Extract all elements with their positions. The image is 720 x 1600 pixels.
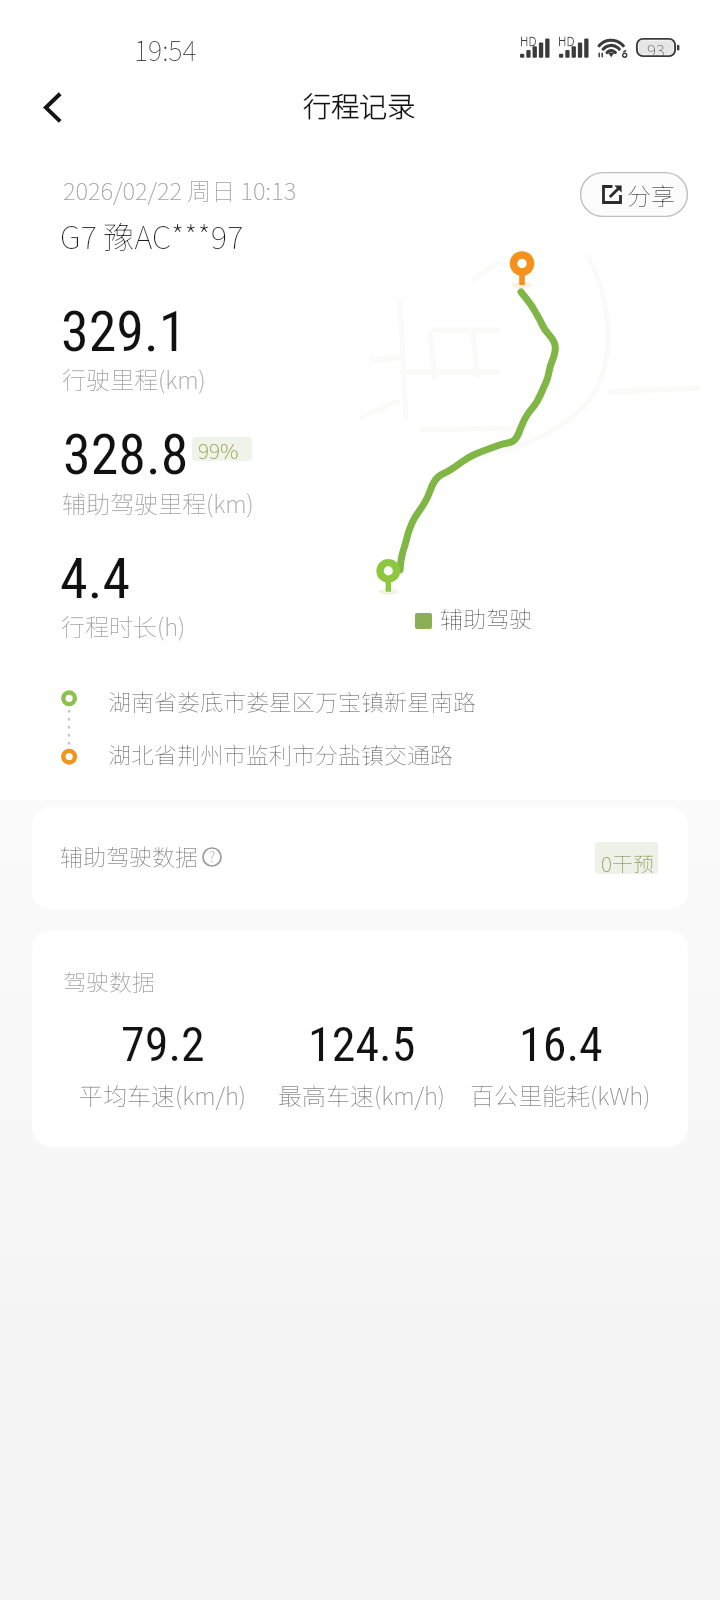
staticText: 79.2 — [121, 1016, 205, 1072]
staticText: 124.5 — [308, 1016, 416, 1072]
staticText: G7 豫AC***97 — [60, 213, 244, 258]
staticText: 百公里能耗(kWh) — [470, 1077, 651, 1112]
staticText: 驾驶数据 — [63, 964, 155, 997]
staticText: 辅助驾驶数据 — [60, 839, 198, 872]
staticText: 19:54 — [134, 30, 197, 69]
button[interactable]: 湖北省荆州市监利市分盐镇交通路 — [44, 731, 604, 773]
staticText: 4.4 — [60, 546, 131, 612]
staticText: HD — [520, 32, 537, 49]
staticText: 0干预 — [601, 848, 654, 878]
staticText: 328.8 — [63, 422, 189, 488]
staticText: 辅助驾驶 — [440, 601, 532, 634]
staticText: 16.4 — [519, 1016, 603, 1072]
staticText: 平均车速(km/h) — [79, 1077, 246, 1112]
button[interactable]: 辅助驾驶数据 — [32, 807, 688, 910]
staticText: 分享 — [627, 177, 675, 212]
staticText: 99% — [198, 435, 239, 465]
staticText: 辅助驾驶里程(km) — [62, 485, 254, 520]
staticText: 2026/02/22 周日 10:13 — [63, 172, 297, 207]
staticText: ? — [209, 846, 216, 866]
staticText: 93 — [647, 37, 665, 56]
staticText: 最高车速(km/h) — [278, 1077, 445, 1112]
staticText: 329.1 — [61, 299, 187, 365]
staticText: HD — [558, 32, 575, 49]
button[interactable]: Back — [23, 77, 85, 139]
button[interactable]: 湖南省娄底市娄星区万宝镇新星南路 — [44, 678, 604, 720]
staticText: 行程记录 — [303, 85, 416, 126]
staticText: 湖北省荆州市监利市分盐镇交通路 — [108, 737, 453, 770]
staticText: 湖南省娄底市娄星区万宝镇新星南路 — [108, 684, 476, 717]
button[interactable]: 分享 — [580, 172, 688, 217]
staticText: 行程时长(h) — [61, 608, 186, 643]
staticText: 行驶里程(km) — [62, 361, 206, 396]
